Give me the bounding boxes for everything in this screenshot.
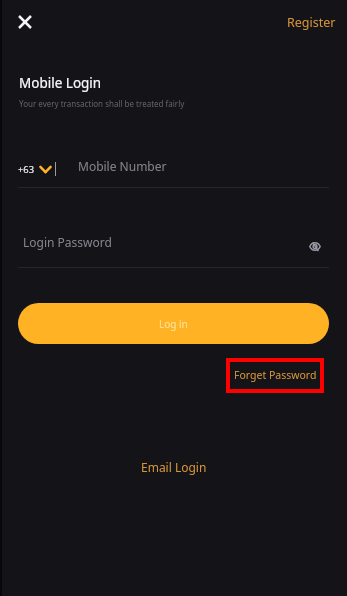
staticText: Log in <box>159 317 188 331</box>
button[interactable]: Show password <box>305 236 325 256</box>
staticText: Login Password <box>23 234 112 250</box>
button[interactable]: Register <box>279 9 344 36</box>
staticText: Register <box>287 14 336 31</box>
button[interactable]: Forget Password <box>226 358 324 393</box>
button[interactable]: +63 <box>18 160 52 178</box>
staticText: Mobile Login <box>19 74 102 92</box>
button[interactable]: Close <box>12 9 37 34</box>
staticText: Forget Password <box>234 368 317 382</box>
button[interactable]: Email Login <box>129 454 219 480</box>
staticText: Your every transaction shall be treated … <box>19 98 185 109</box>
staticText: Mobile Number <box>78 158 167 174</box>
staticText: +63 <box>18 163 34 176</box>
button[interactable]: Log in <box>18 303 329 344</box>
staticText: Email Login <box>141 459 207 475</box>
